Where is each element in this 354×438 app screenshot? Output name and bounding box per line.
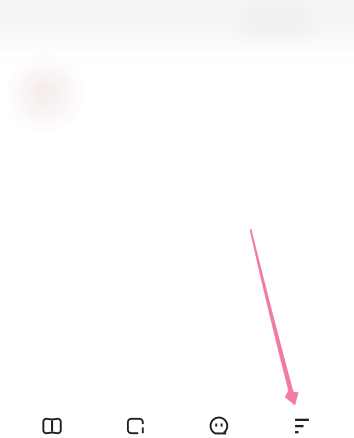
button[interactable]: More [260,415,344,437]
button[interactable]: Chats [177,415,260,437]
button[interactable]: Library [10,415,94,437]
button[interactable]: Projects [94,415,177,437]
